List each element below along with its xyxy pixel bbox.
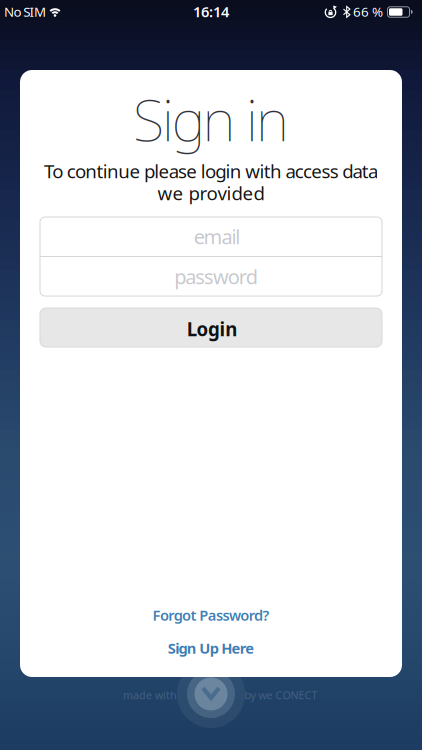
staticText: Forgot Password? bbox=[152, 605, 269, 625]
secureTextField[interactable]: password bbox=[40, 261, 382, 291]
staticText: 66 % bbox=[353, 3, 383, 20]
staticText: Sign in bbox=[133, 81, 289, 157]
button[interactable]: Sign Up Here bbox=[168, 638, 254, 658]
staticText: email bbox=[194, 223, 240, 250]
textField[interactable]: email bbox=[40, 221, 382, 251]
staticText: made with bbox=[123, 688, 177, 702]
staticText: Sign Up Here bbox=[168, 638, 254, 658]
staticText: 16:14 bbox=[193, 2, 229, 21]
staticText: we provided bbox=[157, 181, 264, 205]
staticText: No SIM bbox=[4, 3, 46, 20]
staticText: To continue please login with access dat… bbox=[44, 159, 378, 183]
staticText: by we CONECT bbox=[244, 688, 317, 702]
staticText: Login bbox=[187, 317, 237, 341]
button[interactable]: Forgot Password? bbox=[152, 605, 269, 625]
button[interactable]: Login bbox=[40, 308, 382, 347]
staticText: password bbox=[174, 263, 258, 290]
